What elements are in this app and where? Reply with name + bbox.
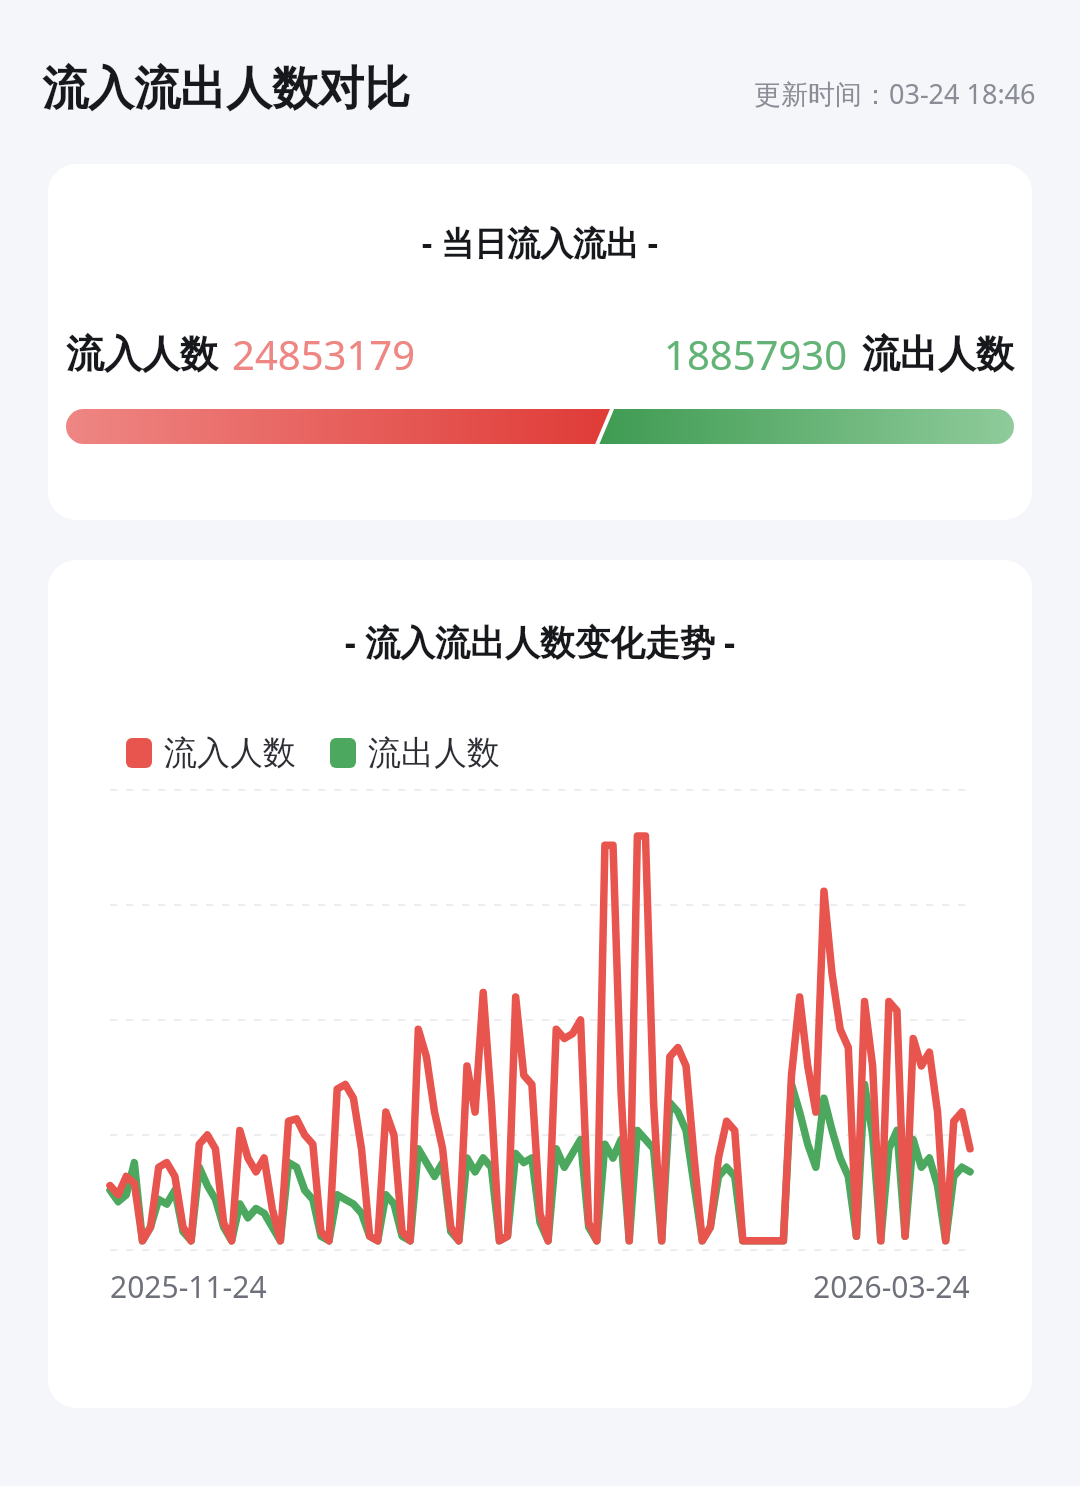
staticText: 流出人数 [862,330,1014,378]
staticText: 24853179 [232,327,416,381]
staticText: 2025-11-24 [110,1266,267,1307]
staticText: - 流入流出人数变化走势 - [48,618,1032,666]
staticText: 更新时间：03-24 18:46 [754,75,1036,112]
staticText: 流入流出人数对比 [42,60,410,118]
staticText: 2026-03-24 [813,1266,970,1307]
staticText: 流入人数 [66,330,218,378]
button[interactable]: - 当日流入流出 - [48,164,1032,520]
staticText: 流入人数 [164,732,296,774]
staticText: 18857930 [664,327,848,381]
button[interactable]: - 流入流出人数变化走势 - [48,560,1032,1408]
staticText: - 当日流入流出 - [48,220,1032,265]
staticText: 流出人数 [368,732,500,774]
